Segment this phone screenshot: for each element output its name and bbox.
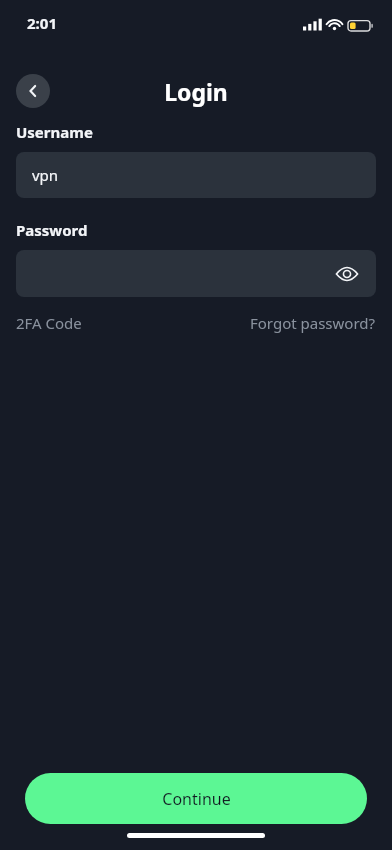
staticText: Password [16, 220, 88, 240]
staticText: Forgot password? [250, 313, 376, 333]
button[interactable]: Show password [16, 250, 376, 297]
button[interactable]: Back [16, 74, 50, 108]
staticText: Continue [162, 788, 231, 810]
staticText: Username [16, 122, 93, 142]
button[interactable]: Show password [332, 259, 362, 289]
staticText: vpn [32, 165, 59, 185]
button[interactable]: Continue [25, 773, 367, 824]
button[interactable]: 2FA Code [16, 313, 82, 333]
button[interactable]: Forgot password? [250, 313, 376, 333]
staticText: Login [164, 76, 228, 107]
staticText: 2:01 [27, 13, 57, 33]
button[interactable]: vpn [16, 152, 376, 198]
staticText: 2FA Code [16, 313, 82, 333]
